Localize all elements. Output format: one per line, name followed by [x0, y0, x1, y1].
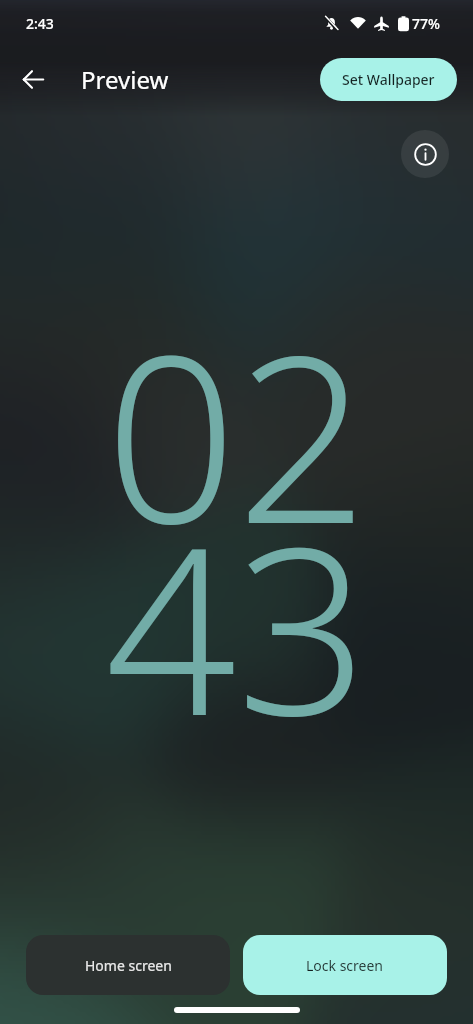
button[interactable]: Back: [9, 55, 57, 103]
button[interactable]: Home screen: [26, 935, 230, 995]
staticText: 2:43: [26, 14, 54, 33]
staticText: 02 43: [105, 277, 368, 782]
button[interactable]: Info: [401, 130, 449, 178]
staticText: Preview: [81, 63, 169, 96]
button[interactable]: Lock screen: [243, 935, 447, 995]
staticText: Lock screen: [306, 956, 384, 975]
button[interactable]: Set Wallpaper: [320, 58, 457, 101]
staticText: Set Wallpaper: [342, 70, 435, 89]
staticText: 77%: [412, 14, 440, 33]
staticText: Home screen: [85, 956, 172, 975]
